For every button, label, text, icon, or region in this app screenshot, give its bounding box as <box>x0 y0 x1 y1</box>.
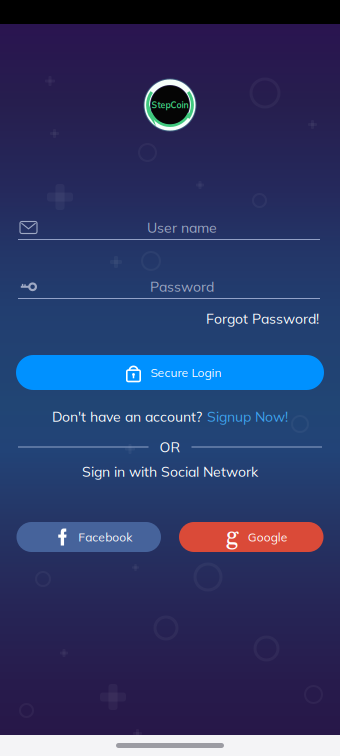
staticText: Forgot Password! <box>206 310 319 327</box>
staticText: User name <box>147 219 217 236</box>
staticText: Password <box>150 278 214 295</box>
staticText: Google <box>248 529 288 545</box>
staticText: Facebook <box>78 529 132 545</box>
staticText: StepCoin <box>151 100 188 110</box>
staticText: Signup Now! <box>207 408 288 425</box>
staticText: g <box>226 521 239 553</box>
staticText: Don't have an account? <box>52 408 202 425</box>
button[interactable]: Signup Now! <box>207 408 288 425</box>
button[interactable]: Facebook <box>16 522 161 552</box>
staticText: Secure Login <box>150 365 221 380</box>
button[interactable]: Secure Login <box>16 355 324 390</box>
staticText: Sign in with Social Network <box>82 463 258 480</box>
button[interactable]: Forgot Password! <box>206 310 319 327</box>
staticText: OR <box>159 438 180 456</box>
button[interactable]: g <box>179 522 323 552</box>
